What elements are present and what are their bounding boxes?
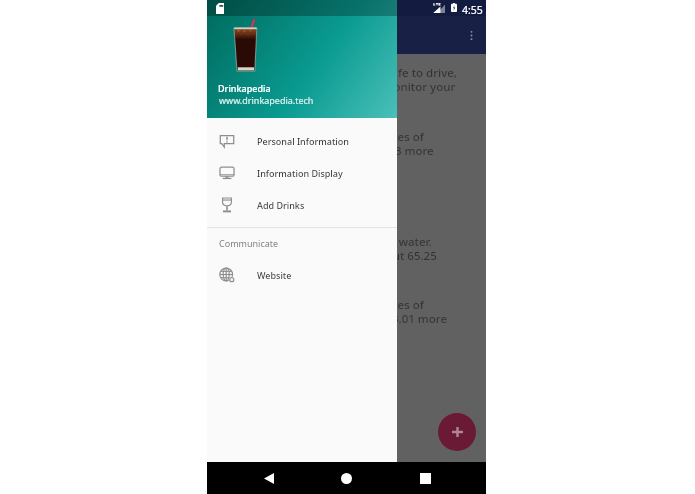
button[interactable]: More options — [460, 24, 482, 46]
staticText: you should monitor your — [319, 79, 456, 95]
button[interactable]: Add drink — [438, 413, 476, 451]
staticText: It is not safe to drive, — [341, 65, 457, 81]
button[interactable]: Website — [207, 259, 397, 291]
button[interactable]: Personal Information — [207, 125, 397, 157]
staticText: Drinkapedia — [218, 82, 271, 94]
staticText: Website — [257, 269, 292, 281]
button[interactable]: Home — [333, 466, 359, 490]
staticText: Communicate — [219, 237, 279, 249]
staticText: www.drinkapedia.tech — [219, 94, 314, 106]
staticText: Information Display — [257, 167, 343, 179]
button[interactable]: Information Display — [207, 157, 397, 189]
staticText: about 65.25 — [372, 248, 437, 264]
button[interactable]: Recent apps — [412, 466, 438, 490]
staticText: consumes of — [354, 129, 424, 145]
staticText: take 3.01 more — [365, 311, 448, 327]
staticText: Personal Information — [257, 135, 349, 147]
staticText: 4:55 — [462, 3, 483, 17]
button[interactable]: Back — [256, 466, 282, 490]
staticText: Add Drinks — [257, 199, 305, 211]
staticText: take 3 more — [368, 143, 434, 159]
staticText: drink water. — [367, 234, 432, 250]
button[interactable]: Add Drinks — [207, 189, 397, 221]
staticText: consumes of — [354, 297, 424, 313]
